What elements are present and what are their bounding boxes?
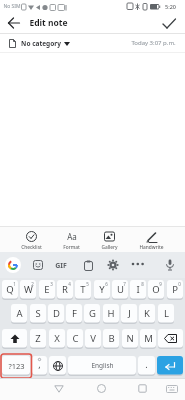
button[interactable]: . <box>138 356 155 375</box>
button[interactable]: G <box>84 304 100 323</box>
staticText: Handwrite <box>139 244 164 251</box>
button[interactable]: Checklist <box>21 230 42 251</box>
button[interactable]: , <box>32 356 47 375</box>
staticText: 4 <box>68 281 71 287</box>
staticText: N <box>126 332 134 345</box>
staticText: C <box>72 332 79 345</box>
staticText: No SIM <box>3 3 21 10</box>
button[interactable]: H <box>103 304 119 323</box>
staticText: B <box>108 332 115 345</box>
staticText: 2 <box>31 281 34 287</box>
staticText: 1 <box>13 281 16 287</box>
button[interactable] <box>2 329 27 348</box>
staticText: 5 <box>86 281 89 287</box>
button[interactable]: ?123 <box>2 356 30 375</box>
button[interactable]: L <box>158 304 174 323</box>
button[interactable] <box>157 356 183 375</box>
staticText: 5:20 <box>165 3 176 10</box>
button[interactable]: Aa <box>63 230 80 251</box>
button[interactable]: C <box>67 329 83 348</box>
staticText: A <box>16 307 23 320</box>
staticText: W <box>24 283 33 296</box>
button[interactable] <box>84 260 93 271</box>
button[interactable]: Handwrite <box>139 230 164 251</box>
button[interactable]: Q <box>2 280 18 299</box>
staticText: 6 <box>105 281 108 287</box>
staticText: I <box>136 283 140 296</box>
button[interactable]: R <box>57 280 73 299</box>
staticText: 0 <box>178 281 181 287</box>
button[interactable]: No category <box>0 34 185 52</box>
staticText: P <box>172 283 178 296</box>
staticText: 7 <box>123 281 126 287</box>
staticText: 3 <box>50 281 53 287</box>
button[interactable] <box>166 385 178 393</box>
staticText: O <box>152 283 160 296</box>
button[interactable]: D <box>48 304 64 323</box>
button[interactable]: B <box>103 329 119 348</box>
button[interactable]: W <box>20 280 36 299</box>
staticText: Checklist <box>21 244 42 251</box>
button[interactable]: I <box>130 280 146 299</box>
staticText: Y <box>99 283 105 296</box>
button[interactable]: O <box>148 280 164 299</box>
button[interactable] <box>158 329 183 348</box>
button[interactable] <box>5 257 21 273</box>
button[interactable]: E <box>39 280 55 299</box>
button[interactable]: A <box>11 304 27 323</box>
button[interactable] <box>97 384 106 393</box>
staticText: T <box>80 283 86 296</box>
button[interactable] <box>166 259 174 271</box>
staticText: Aa <box>67 231 77 242</box>
staticText: ?123 <box>8 361 25 371</box>
staticText: No category <box>21 39 61 48</box>
staticText: , <box>38 358 41 370</box>
staticText: S <box>35 307 41 320</box>
button[interactable]: F <box>66 304 82 323</box>
staticText: 9 <box>159 281 162 287</box>
button[interactable]: J <box>121 304 137 323</box>
staticText: H <box>107 307 115 320</box>
staticText: GIF <box>55 261 67 271</box>
staticText: J <box>128 307 131 320</box>
staticText: Format <box>63 244 80 251</box>
button[interactable] <box>131 262 145 266</box>
staticText: Z <box>35 332 41 345</box>
button[interactable]: Y <box>94 280 110 299</box>
staticText: M <box>144 332 153 345</box>
staticText: V <box>90 332 96 345</box>
button[interactable]: K <box>139 304 155 323</box>
staticText: R <box>62 283 68 296</box>
button[interactable]: P <box>167 280 183 299</box>
button[interactable] <box>33 260 43 270</box>
staticText: U <box>117 283 124 296</box>
button[interactable] <box>49 356 66 375</box>
button[interactable] <box>108 260 118 270</box>
staticText: Today 3:07 p.m. <box>131 39 176 47</box>
staticText: . <box>145 358 148 370</box>
button[interactable]: M <box>140 329 156 348</box>
staticText: F <box>72 307 77 320</box>
staticText: E <box>44 283 50 296</box>
staticText: D <box>53 307 60 320</box>
button[interactable]: N <box>122 329 138 348</box>
staticText: Gallery <box>101 244 118 251</box>
button[interactable]: U <box>112 280 128 299</box>
button[interactable]: V <box>85 329 101 348</box>
staticText: 8 <box>141 281 144 287</box>
staticText: X <box>54 332 60 345</box>
button[interactable] <box>162 18 177 29</box>
button[interactable] <box>54 385 64 393</box>
button[interactable]: S <box>30 304 46 323</box>
staticText: Edit note <box>29 17 68 29</box>
staticText: G <box>89 307 96 320</box>
button[interactable]: English <box>68 356 136 375</box>
button[interactable]: Gallery <box>101 230 118 251</box>
button[interactable]: X <box>49 329 65 348</box>
button[interactable]: T <box>75 280 91 299</box>
button[interactable] <box>138 384 147 393</box>
button[interactable]: Z <box>30 329 46 348</box>
staticText: Q <box>6 283 14 296</box>
button[interactable] <box>8 17 20 29</box>
staticText: K <box>144 307 150 320</box>
